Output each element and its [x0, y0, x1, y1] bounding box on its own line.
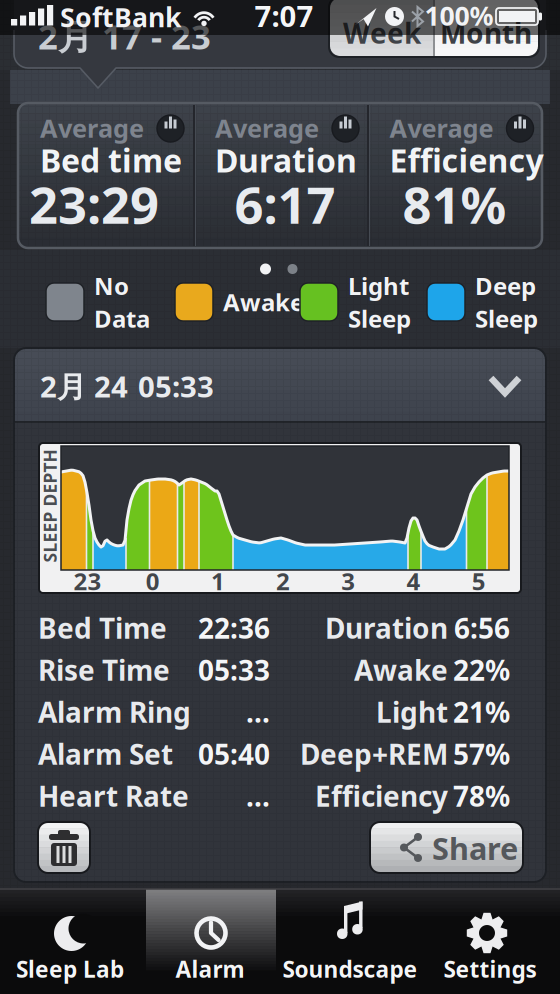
staticText: Efficiency	[315, 777, 448, 815]
staticText: Share	[432, 828, 518, 868]
staticText: Month	[440, 14, 532, 52]
staticText: Duration	[325, 609, 448, 647]
staticText: 57%	[453, 735, 510, 773]
staticText: Awake	[223, 286, 304, 318]
staticText: 2	[276, 565, 290, 597]
staticText: Alarm Ring	[38, 693, 191, 731]
button[interactable]: Soundscape	[280, 888, 420, 994]
staticText: Light	[376, 693, 448, 731]
staticText: Settings	[443, 954, 536, 984]
staticText: 05:33	[198, 651, 270, 689]
staticText: Rise Time	[38, 651, 170, 689]
staticText: 05:33	[138, 366, 214, 405]
staticText: Light Sleep	[348, 270, 411, 334]
staticText: 5	[472, 565, 486, 597]
staticText: Bed time	[40, 139, 182, 181]
staticText: Alarm	[175, 954, 244, 984]
staticText: 3	[341, 565, 355, 597]
staticText: ...	[246, 777, 270, 815]
staticText: 4	[406, 565, 420, 597]
button[interactable]: Delete	[38, 822, 90, 873]
staticText: 05:40	[198, 735, 270, 773]
staticText: SLEEP DEPTH	[0, 494, 106, 517]
staticText: Duration	[215, 139, 357, 181]
staticText: Week	[343, 14, 421, 52]
button[interactable]: 2月 24	[14, 348, 546, 421]
staticText: 81%	[402, 170, 506, 238]
staticText: Bed Time	[38, 609, 167, 647]
staticText: 23:29	[29, 170, 159, 238]
button[interactable]: Alarm	[140, 888, 280, 994]
staticText: Heart Rate	[38, 777, 189, 815]
staticText: SoftBank	[60, 0, 182, 35]
button[interactable]	[330, 0, 434, 56]
staticText: Sleep Lab	[16, 954, 124, 984]
staticText: Average	[40, 111, 144, 145]
button[interactable]: Average	[18, 104, 192, 247]
staticText: No Data	[94, 270, 150, 334]
staticText: 7:07	[254, 0, 313, 35]
staticText: 2月 24	[40, 366, 128, 405]
button[interactable]: Sleep Lab	[0, 888, 140, 994]
staticText: Soundscape	[282, 954, 417, 984]
staticText: 1	[211, 565, 225, 597]
staticText: 6:56	[454, 609, 510, 647]
staticText: Deep Sleep	[475, 270, 538, 334]
staticText: 22:36	[198, 609, 270, 647]
staticText: ...	[246, 693, 270, 731]
button[interactable]: Share	[370, 822, 523, 873]
button[interactable]: Average	[367, 104, 541, 247]
staticText: Awake	[354, 651, 448, 689]
staticText: Average	[215, 111, 319, 145]
staticText: 2月 17 - 23	[38, 13, 211, 59]
staticText: Alarm Set	[38, 735, 173, 773]
staticText: 78%	[453, 777, 510, 815]
staticText: 22%	[453, 651, 510, 689]
staticText: 21%	[453, 693, 510, 731]
staticText: 6:17	[234, 170, 335, 238]
staticText: 0	[146, 565, 160, 597]
staticText: 23	[73, 565, 101, 597]
staticText: Average	[389, 111, 493, 145]
staticText: 100%	[424, 0, 493, 33]
staticText: Deep+REM	[300, 735, 448, 773]
button[interactable]: Settings	[420, 888, 560, 994]
staticText: Efficiency	[389, 139, 543, 181]
button[interactable]: Average	[193, 104, 367, 247]
button[interactable]	[434, 0, 538, 56]
